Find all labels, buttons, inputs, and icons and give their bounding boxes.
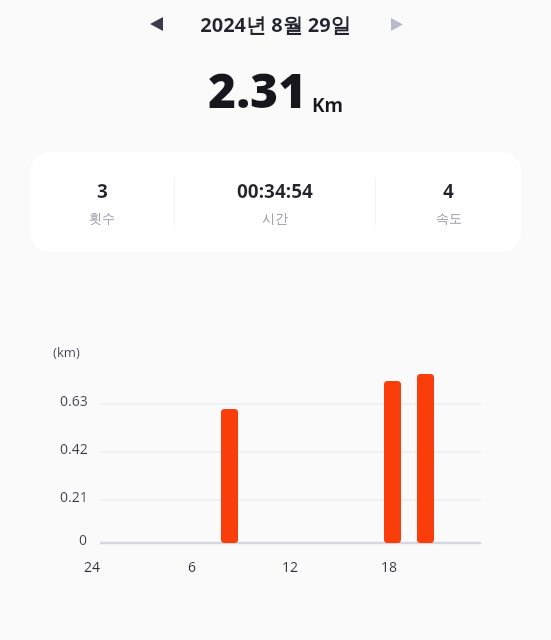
staticText: 2024년 8월 29일: [200, 11, 351, 38]
button[interactable]: Next day: [381, 8, 413, 40]
button[interactable]: 3: [30, 152, 521, 252]
staticText: (km): [53, 343, 80, 361]
staticText: 횟수: [89, 210, 115, 226]
staticText: 3: [97, 178, 108, 204]
staticText: 0.42: [60, 439, 88, 458]
staticText: Km: [312, 92, 344, 118]
staticText: 시간: [262, 210, 288, 226]
staticText: 6: [188, 557, 197, 576]
staticText: 속도: [436, 210, 462, 226]
button[interactable]: 3: [30, 178, 174, 226]
staticText: 2.31: [208, 57, 307, 122]
button[interactable]: 4: [376, 178, 521, 226]
staticText: 0: [79, 530, 88, 549]
staticText: 0.63: [60, 391, 88, 410]
button[interactable]: 00:34:54: [175, 178, 375, 226]
staticText: 4: [443, 178, 454, 204]
button[interactable]: Previous day: [140, 8, 172, 40]
staticText: 00:34:54: [237, 178, 313, 204]
staticText: 0.21: [60, 487, 88, 506]
staticText: 24: [84, 557, 101, 576]
staticText: 12: [282, 557, 299, 576]
staticText: 18: [381, 557, 398, 576]
